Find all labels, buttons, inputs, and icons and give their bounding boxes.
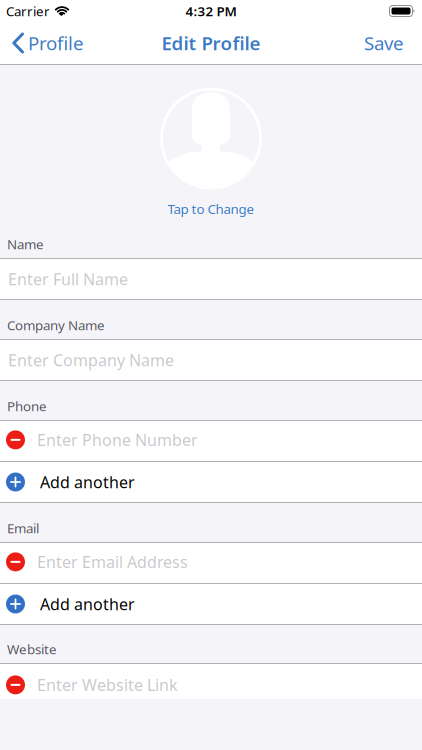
staticText: Carrier (6, 2, 50, 20)
button[interactable]: Save (364, 31, 404, 55)
staticText: Add another (40, 593, 135, 615)
staticText: Profile (28, 31, 84, 55)
staticText: Email (7, 519, 39, 537)
button[interactable]: Enter Full Name (0, 259, 422, 299)
staticText: Edit Profile (161, 31, 260, 55)
staticText: Save (364, 31, 404, 55)
button[interactable]: Remove (6, 552, 25, 571)
button[interactable]: Back to Profile (12, 31, 84, 55)
button[interactable]: Tap to Change profile photo (161, 89, 260, 218)
button[interactable]: Enter Website Link (37, 674, 422, 695)
staticText: Enter Email Address (37, 551, 188, 572)
staticText: Tap to Change (167, 200, 254, 218)
staticText: 4:32 PM (185, 2, 236, 20)
button[interactable]: Add another (0, 584, 422, 624)
staticText: Company Name (7, 316, 105, 334)
staticText: Name (7, 235, 44, 253)
staticText: Phone (7, 397, 47, 415)
button[interactable]: Enter Email Address (37, 551, 422, 572)
button[interactable]: Remove (6, 430, 25, 449)
button[interactable]: Enter Company Name (0, 340, 422, 380)
button[interactable]: Remove (6, 675, 25, 694)
staticText: Enter Phone Number (37, 429, 198, 450)
staticText: Enter Website Link (37, 674, 178, 695)
button[interactable]: Add another (0, 462, 422, 502)
staticText: Website (7, 640, 57, 658)
staticText: Enter Company Name (8, 349, 174, 371)
button[interactable]: Enter Phone Number (37, 429, 422, 450)
staticText: Add another (40, 471, 135, 493)
staticText: Enter Full Name (8, 268, 128, 290)
